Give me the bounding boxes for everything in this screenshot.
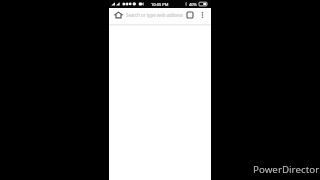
button[interactable]: Tabs bbox=[184, 9, 196, 21]
button[interactable]: Home bbox=[112, 9, 124, 21]
staticText: 40% bbox=[189, 2, 197, 7]
staticText: Search or type web address bbox=[126, 12, 183, 18]
staticText: PowerDirector bbox=[253, 163, 320, 176]
button[interactable]: Search or type web address bbox=[126, 12, 183, 18]
staticText: 10:05 PM bbox=[151, 2, 169, 7]
button[interactable]: More options bbox=[196, 9, 208, 21]
